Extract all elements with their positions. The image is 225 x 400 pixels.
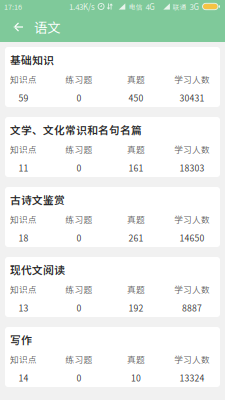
staticText: 知识点	[10, 143, 37, 155]
staticText: 学习人数	[174, 143, 210, 155]
staticText: 真题	[127, 73, 145, 85]
button[interactable]: 写作	[5, 327, 220, 387]
staticText: 0	[76, 301, 81, 314]
staticText: 14650	[179, 231, 204, 244]
staticText: 基础知识	[10, 52, 54, 67]
button[interactable]: 返回	[0, 14, 28, 40]
staticText: 261	[128, 231, 143, 244]
staticText: 写作	[10, 332, 32, 347]
staticText: 学习人数	[174, 283, 210, 295]
staticText: 联通	[172, 2, 186, 11]
staticText: 古诗文鉴赏	[10, 192, 65, 207]
staticText: 知识点	[10, 73, 37, 85]
staticText: 真题	[127, 213, 145, 225]
button[interactable]: 文学、文化常识和名句名篇	[5, 117, 220, 177]
staticText: 练习题	[65, 283, 92, 295]
staticText: 知识点	[10, 353, 37, 365]
staticText: 0	[76, 371, 81, 384]
button[interactable]: 基础知识	[5, 47, 220, 107]
staticText: 真题	[127, 283, 145, 295]
button[interactable]: 现代文阅读	[5, 257, 220, 317]
staticText: 13324	[179, 371, 204, 384]
staticText: 10	[131, 371, 141, 384]
staticText: 0	[76, 91, 81, 104]
staticText: 30431	[179, 91, 204, 104]
staticText: 0	[76, 231, 81, 244]
staticText: 练习题	[65, 213, 92, 225]
staticText: 练习题	[65, 353, 92, 365]
staticText: 知识点	[10, 213, 37, 225]
staticText: 4G	[145, 1, 155, 12]
staticText: 8887	[182, 301, 202, 314]
staticText: 电信	[129, 2, 143, 11]
staticText: 现代文阅读	[10, 262, 65, 277]
staticText: 0	[76, 161, 81, 174]
staticText: 18	[18, 231, 28, 244]
staticText: 文学、文化常识和名句名篇	[10, 122, 142, 137]
staticText: 192	[128, 301, 143, 314]
staticText: 14	[18, 371, 28, 384]
staticText: 学习人数	[174, 73, 210, 85]
staticText: 3G	[189, 1, 199, 12]
staticText: 真题	[127, 143, 145, 155]
staticText: 知识点	[10, 283, 37, 295]
staticText: 练习题	[65, 143, 92, 155]
staticText: 学习人数	[174, 213, 210, 225]
staticText: 语文	[34, 17, 60, 37]
staticText: 真题	[127, 353, 145, 365]
staticText: 17:16	[4, 1, 22, 12]
staticText: 450	[128, 91, 143, 104]
button[interactable]: 古诗文鉴赏	[5, 187, 220, 247]
staticText: 13	[18, 301, 28, 314]
staticText: 练习题	[65, 73, 92, 85]
staticText: 59	[18, 91, 28, 104]
staticText: 11	[18, 161, 28, 174]
staticText: 18303	[179, 161, 204, 174]
staticText: 学习人数	[174, 353, 210, 365]
staticText: 1.43K/s	[69, 1, 95, 12]
staticText: 161	[128, 161, 143, 174]
